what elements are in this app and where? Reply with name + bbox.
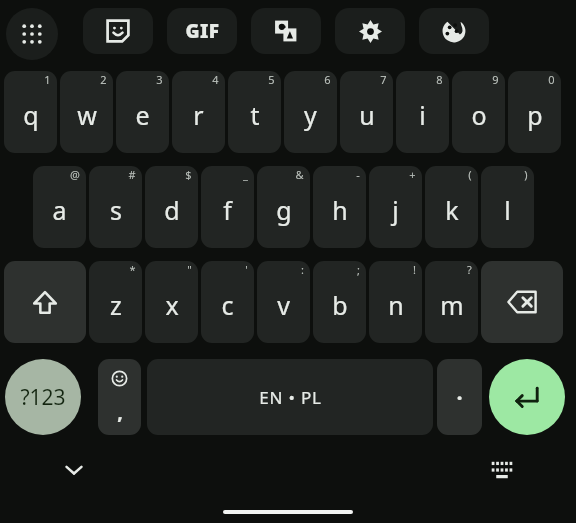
staticText: c (221, 288, 234, 322)
staticText: t (250, 98, 260, 132)
staticText: _ (243, 167, 248, 182)
staticText: ( (468, 167, 472, 182)
staticText: 5 (268, 72, 275, 87)
button[interactable]: + (369, 166, 422, 248)
staticText: z (110, 288, 122, 322)
button[interactable]: ?123 (5, 359, 81, 435)
staticText: p (527, 98, 543, 132)
button[interactable]: $ (145, 166, 198, 248)
button[interactable]: * (89, 261, 142, 343)
button[interactable]: 2 (60, 71, 113, 153)
staticText: g (276, 193, 292, 227)
staticText: 4 (212, 72, 219, 87)
button[interactable]: # (89, 166, 142, 248)
button[interactable]: 7 (340, 71, 393, 153)
button[interactable]: 3 (116, 71, 169, 153)
staticText: + (409, 167, 416, 182)
button[interactable]: ! (369, 261, 422, 343)
button[interactable]: @ (33, 166, 86, 248)
staticText: ' (245, 262, 248, 277)
staticText: f (223, 193, 232, 227)
staticText: b (332, 288, 348, 322)
staticText: u (359, 98, 375, 132)
staticText: * (129, 262, 136, 277)
staticText: 6 (324, 72, 331, 87)
staticText: $ (185, 167, 192, 182)
staticText: w (77, 98, 97, 132)
staticText: 9 (492, 72, 499, 87)
button[interactable]: ( (425, 166, 478, 248)
button[interactable]: Period (437, 359, 482, 435)
staticText: a (52, 193, 67, 227)
staticText: e (135, 98, 150, 132)
button[interactable]: 1 (4, 71, 57, 153)
staticText: s (110, 193, 122, 227)
staticText: ; (357, 262, 360, 277)
staticText: # (128, 167, 136, 182)
button[interactable]: _ (201, 166, 254, 248)
button[interactable]: Backspace (481, 261, 563, 343)
button[interactable]: 9 (452, 71, 505, 153)
staticText: 1 (44, 72, 51, 87)
button[interactable]: GIF (167, 8, 237, 54)
staticText: j (392, 193, 399, 227)
button[interactable]: Shift (4, 261, 86, 343)
staticText: l (504, 193, 511, 227)
staticText: y (304, 98, 317, 132)
button[interactable]: Enter (489, 359, 565, 435)
button[interactable]: ? (425, 261, 478, 343)
staticText: 8 (436, 72, 443, 87)
staticText: 3 (156, 72, 163, 87)
button[interactable]: " (145, 261, 198, 343)
staticText: 2 (100, 72, 107, 87)
staticText: . (456, 376, 463, 406)
staticText: v (277, 288, 290, 322)
staticText: " (187, 262, 192, 277)
staticText: k (445, 193, 459, 227)
button[interactable]: 6 (284, 71, 337, 153)
button[interactable]: 0 (508, 71, 561, 153)
staticText: @ (70, 167, 80, 182)
staticText: 0 (548, 72, 555, 87)
button[interactable]: - (313, 166, 366, 248)
staticText: & (295, 167, 304, 182)
staticText: n (388, 288, 404, 322)
staticText: ! (413, 262, 416, 277)
button[interactable]: Hide keyboard (52, 449, 96, 491)
staticText: - (356, 167, 360, 182)
staticText: ? (467, 262, 472, 277)
staticText: q (23, 98, 39, 132)
button[interactable]: 8 (396, 71, 449, 153)
staticText: : (301, 262, 304, 277)
button[interactable]: Theme (419, 8, 489, 54)
button[interactable]: Stickers (83, 8, 153, 54)
button[interactable]: Translate (251, 8, 321, 54)
staticText: h (332, 193, 348, 227)
staticText: i (419, 98, 426, 132)
staticText: x (165, 288, 179, 322)
button[interactable]: & (257, 166, 310, 248)
button[interactable]: All apps (6, 8, 58, 60)
staticText: EN • PL (259, 386, 322, 409)
staticText: d (164, 193, 180, 227)
button[interactable]: ; (313, 261, 366, 343)
staticText: , (117, 398, 123, 425)
staticText: 7 (380, 72, 387, 87)
staticText: m (440, 288, 464, 322)
button[interactable]: Settings (335, 8, 405, 54)
staticText: ) (524, 167, 528, 182)
button[interactable]: ' (201, 261, 254, 343)
button[interactable]: 5 (228, 71, 281, 153)
button[interactable]: : (257, 261, 310, 343)
button[interactable]: ) (481, 166, 534, 248)
staticText: ?123 (20, 383, 66, 412)
staticText: r (193, 98, 204, 132)
staticText: o (471, 98, 487, 132)
staticText: GIF (185, 18, 220, 44)
button[interactable]: EN • PL (147, 359, 433, 435)
button[interactable]: Emoji and comma (98, 359, 141, 435)
button[interactable]: Switch keyboard (480, 449, 524, 491)
button[interactable]: 4 (172, 71, 225, 153)
